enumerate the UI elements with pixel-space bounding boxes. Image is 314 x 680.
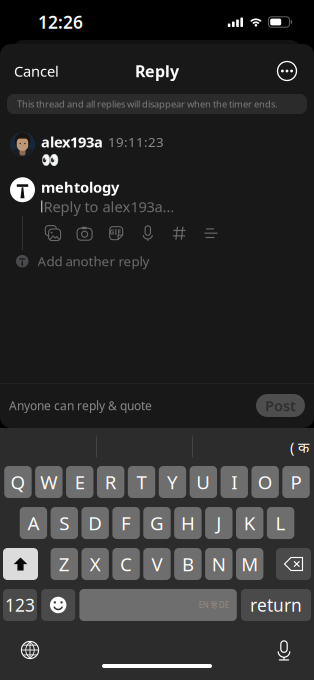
button[interactable]: Switch keyboard — [15, 635, 45, 665]
button[interactable]: F — [112, 507, 140, 539]
button[interactable]: H — [174, 507, 202, 539]
staticText: Reply — [135, 60, 179, 82]
staticText: 👀 — [41, 151, 59, 168]
staticText: U — [196, 470, 210, 494]
staticText: 12:26 — [38, 10, 83, 33]
button[interactable]: Emoji — [41, 589, 75, 621]
staticText: E — [75, 470, 85, 494]
button[interactable]: M — [236, 548, 263, 580]
button[interactable]: Hashtag — [170, 224, 188, 242]
button[interactable]: R — [97, 466, 124, 498]
button[interactable]: Cancel — [0, 54, 73, 88]
button[interactable]: T — [128, 466, 155, 498]
button[interactable]: S — [51, 507, 78, 539]
staticText: O — [258, 470, 273, 494]
button[interactable]: Voice message — [139, 224, 157, 242]
staticText: C — [120, 552, 132, 576]
button[interactable]: Y — [159, 466, 186, 498]
staticText: N — [212, 552, 226, 576]
staticText: B — [182, 552, 194, 576]
button[interactable]: P — [282, 466, 310, 498]
staticText: S — [59, 511, 69, 535]
staticText: mehtology — [41, 177, 119, 197]
button[interactable]: J — [205, 507, 232, 539]
staticText: 123 — [5, 593, 35, 616]
button[interactable]: Post — [256, 394, 305, 417]
staticText: A — [27, 511, 39, 535]
staticText: return — [250, 593, 302, 616]
button[interactable]: Space — [79, 589, 237, 621]
staticText: W — [40, 470, 57, 494]
staticText: alex193a — [41, 132, 103, 151]
staticText: X — [90, 552, 101, 576]
button[interactable]: Photo — [44, 224, 62, 242]
staticText: M — [241, 552, 258, 576]
staticText: Z — [59, 552, 70, 576]
staticText: Reply to alex193a... — [43, 197, 174, 216]
button[interactable]: N — [205, 548, 232, 580]
staticText: This thread and all replies will disappe… — [17, 98, 278, 110]
button[interactable]: O — [251, 466, 279, 498]
button[interactable]: Q — [4, 466, 32, 498]
staticText: P — [291, 470, 302, 494]
button[interactable]: More options — [270, 54, 304, 88]
button[interactable]: GIF — [107, 224, 125, 242]
button[interactable]: E — [66, 466, 93, 498]
staticText: GIF — [109, 227, 121, 236]
staticText: Add another reply — [37, 252, 149, 270]
button[interactable]: Z — [51, 548, 78, 580]
button[interactable]: U — [190, 466, 217, 498]
staticText: V — [151, 552, 162, 576]
button[interactable]: Formatting — [202, 224, 220, 242]
staticText: 19:11:23 — [108, 133, 164, 151]
staticText: G — [150, 511, 164, 535]
staticText: R — [105, 470, 117, 494]
button[interactable]: Camera — [76, 224, 94, 242]
button[interactable]: D — [81, 507, 109, 539]
button[interactable]: V — [143, 548, 171, 580]
staticText: H — [181, 511, 195, 535]
button[interactable]: X — [81, 548, 109, 580]
button[interactable]: G — [143, 507, 171, 539]
button[interactable]: B — [174, 548, 202, 580]
button[interactable]: C — [112, 548, 140, 580]
staticText: EN हिं DE — [199, 600, 229, 610]
staticText: Q — [10, 470, 25, 494]
staticText: Cancel — [14, 61, 59, 81]
button[interactable]: I — [221, 466, 248, 498]
staticText: Anyone can reply & quote — [9, 397, 152, 413]
staticText: Post — [265, 396, 296, 415]
button[interactable]: return — [241, 589, 311, 621]
staticText: I — [231, 470, 237, 494]
button[interactable]: 123 — [3, 589, 37, 621]
staticText: D — [88, 511, 102, 535]
button[interactable]: W — [35, 466, 62, 498]
staticText: J — [216, 511, 221, 535]
button[interactable]: K — [236, 507, 263, 539]
staticText: F — [121, 511, 131, 535]
staticText: L — [276, 511, 286, 535]
staticText: ( क — [290, 437, 309, 457]
button[interactable]: Dictation — [269, 635, 299, 665]
staticText: T — [136, 470, 146, 494]
staticText: K — [244, 511, 256, 535]
button[interactable]: A — [20, 507, 47, 539]
button[interactable]: Add another reply — [0, 250, 314, 272]
button[interactable]: Shift — [3, 548, 38, 580]
staticText: Y — [167, 470, 178, 494]
button[interactable]: Delete — [276, 548, 311, 580]
button[interactable]: L — [267, 507, 294, 539]
